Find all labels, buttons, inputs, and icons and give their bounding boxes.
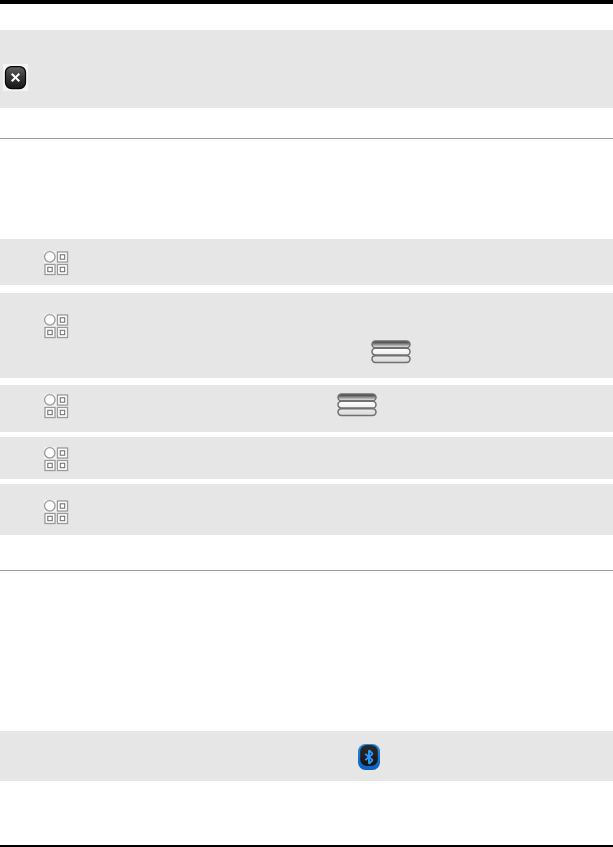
- button[interactable]: Close: [3, 64, 28, 91]
- button[interactable]: [0, 385, 613, 432]
- button[interactable]: [0, 239, 613, 285]
- other: Image placeholder: [44, 447, 68, 471]
- other: Image placeholder: [44, 251, 68, 275]
- other: Image placeholder: [44, 394, 68, 418]
- button[interactable]: [0, 437, 613, 479]
- other: Menu: [338, 394, 376, 416]
- other: Menu: [372, 341, 410, 363]
- other: Image placeholder: [44, 500, 68, 524]
- button[interactable]: [0, 731, 613, 781]
- other: Image placeholder: [44, 314, 68, 338]
- button[interactable]: [0, 293, 613, 378]
- button[interactable]: [0, 484, 613, 535]
- button[interactable]: Bluetooth: [358, 744, 380, 770]
- button[interactable]: [0, 30, 613, 108]
